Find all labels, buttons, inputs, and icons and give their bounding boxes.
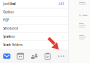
button[interactable]: Tasks	[41, 49, 54, 63]
staticText: Search Folders	[3, 43, 22, 47]
staticText: POP	[3, 19, 9, 22]
button[interactable]: Calendar	[14, 49, 27, 63]
button[interactable]: Mail	[0, 49, 14, 63]
staticText: Junk Email	[3, 2, 16, 6]
button[interactable]: More	[54, 49, 68, 63]
button[interactable]: Scheduled	[0, 25, 68, 32]
staticText: 245	[59, 2, 65, 6]
staticText: Spambox	[3, 35, 14, 38]
button[interactable]: Junk Email	[0, 0, 68, 8]
button[interactable]: Spambox	[0, 33, 68, 41]
staticText: Outbox	[3, 10, 13, 14]
button[interactable]: Search Folders	[0, 41, 68, 49]
button[interactable]: Contacts	[27, 49, 41, 63]
button[interactable]: Outbox	[0, 8, 68, 16]
staticText: Scheduled	[3, 27, 18, 30]
button[interactable]: POP	[0, 16, 68, 24]
